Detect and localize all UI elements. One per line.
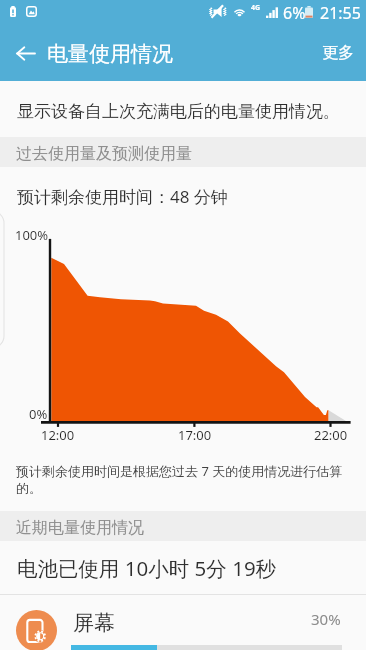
staticText: 12:00 (41, 426, 75, 444)
staticText: 22:00 (314, 426, 348, 444)
staticText: 显示设备自上次充满电后的电量使用情况。 (17, 101, 340, 122)
staticText: 电量使用情况 (47, 41, 173, 67)
staticText: 17:00 (178, 426, 212, 444)
staticText: 近期电量使用情况 (16, 518, 144, 538)
button[interactable]: Back (2, 30, 48, 76)
button[interactable]: 更多 (308, 25, 366, 81)
staticText: 更多 (322, 43, 354, 63)
staticText: 21:55 (320, 2, 361, 24)
staticText: 预计剩余使用时间：48 分钟 (17, 185, 228, 208)
staticText: 6% (283, 2, 306, 24)
staticText: 屏幕 (73, 610, 115, 636)
staticText: 100% (15, 226, 49, 244)
staticText: 0% (29, 405, 48, 423)
button[interactable]: 屏幕 (0, 595, 366, 650)
staticText: 4G (251, 3, 261, 13)
staticText: 过去使用量及预测使用量 (16, 144, 192, 164)
staticText: 电池已使用 10小时 5分 19秒 (17, 554, 277, 582)
staticText: 预计剩余使用时间是根据您过去 7 天的使用情况进行估算的。 (16, 462, 346, 497)
staticText: 30% (311, 609, 341, 629)
